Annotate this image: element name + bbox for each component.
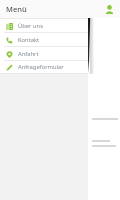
button[interactable]: Über uns	[0, 19, 88, 32]
staticText: Kontakt	[18, 36, 40, 44]
staticText: Anfrageformular	[18, 63, 64, 71]
button[interactable]: Kontakt	[0, 33, 88, 46]
staticText: Anfahrt	[18, 50, 39, 58]
staticText: Menü	[6, 4, 27, 14]
button[interactable]: Account	[104, 4, 115, 15]
staticText: Über uns	[18, 22, 43, 30]
button[interactable]: Anfahrt	[0, 47, 88, 60]
button[interactable]: Anfrageformular	[0, 61, 88, 73]
